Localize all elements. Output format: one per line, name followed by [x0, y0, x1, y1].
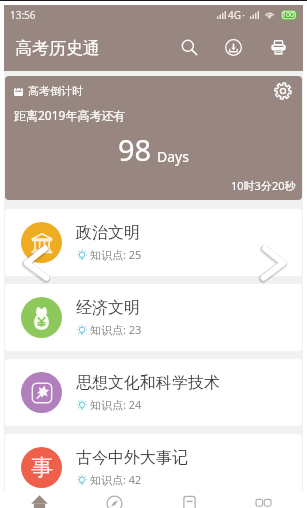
staticText: 政治文明 — [76, 223, 140, 243]
button[interactable]: Mine — [228, 491, 303, 508]
button[interactable]: Download — [224, 38, 242, 56]
button[interactable]: Discover — [78, 491, 153, 508]
staticText: 98 — [118, 130, 152, 169]
staticText: 思想文化和科学技术 — [76, 373, 220, 393]
button[interactable]: Home — [4, 491, 78, 508]
staticText: 事 — [31, 454, 53, 482]
staticText: Days — [157, 147, 189, 166]
staticText: 10时3分20秒 — [231, 178, 296, 193]
staticText: 距离2019年高考还有 — [14, 107, 126, 123]
staticText: 高考历史通 — [15, 38, 100, 59]
staticText: 13:56 — [10, 8, 36, 22]
staticText: 知识点: 42 — [90, 472, 142, 487]
staticText: 古今中外大事记 — [76, 448, 188, 468]
button[interactable]: Previous — [17, 245, 53, 281]
staticText: 100 — [282, 10, 295, 20]
button[interactable]: Settings — [273, 81, 292, 100]
staticText: 4G — [228, 8, 241, 22]
button[interactable]: 经济文明 — [5, 284, 302, 351]
staticText: 知识点: 25 — [90, 247, 142, 262]
staticText: 高考倒计时 — [28, 84, 83, 98]
button[interactable]: 事 — [5, 434, 302, 501]
button[interactable]: Search — [180, 38, 198, 56]
button[interactable]: Print — [269, 38, 287, 56]
button[interactable]: Notes — [153, 491, 228, 508]
button[interactable]: 思想文化和科学技术 — [5, 359, 302, 426]
button[interactable]: 政治文明 — [5, 209, 302, 276]
button[interactable]: 高考倒计时 — [5, 76, 302, 200]
staticText: 经济文明 — [76, 298, 140, 318]
staticText: 知识点: 23 — [90, 322, 142, 337]
staticText: 知识点: 24 — [90, 397, 142, 412]
button[interactable]: Next — [257, 245, 293, 281]
